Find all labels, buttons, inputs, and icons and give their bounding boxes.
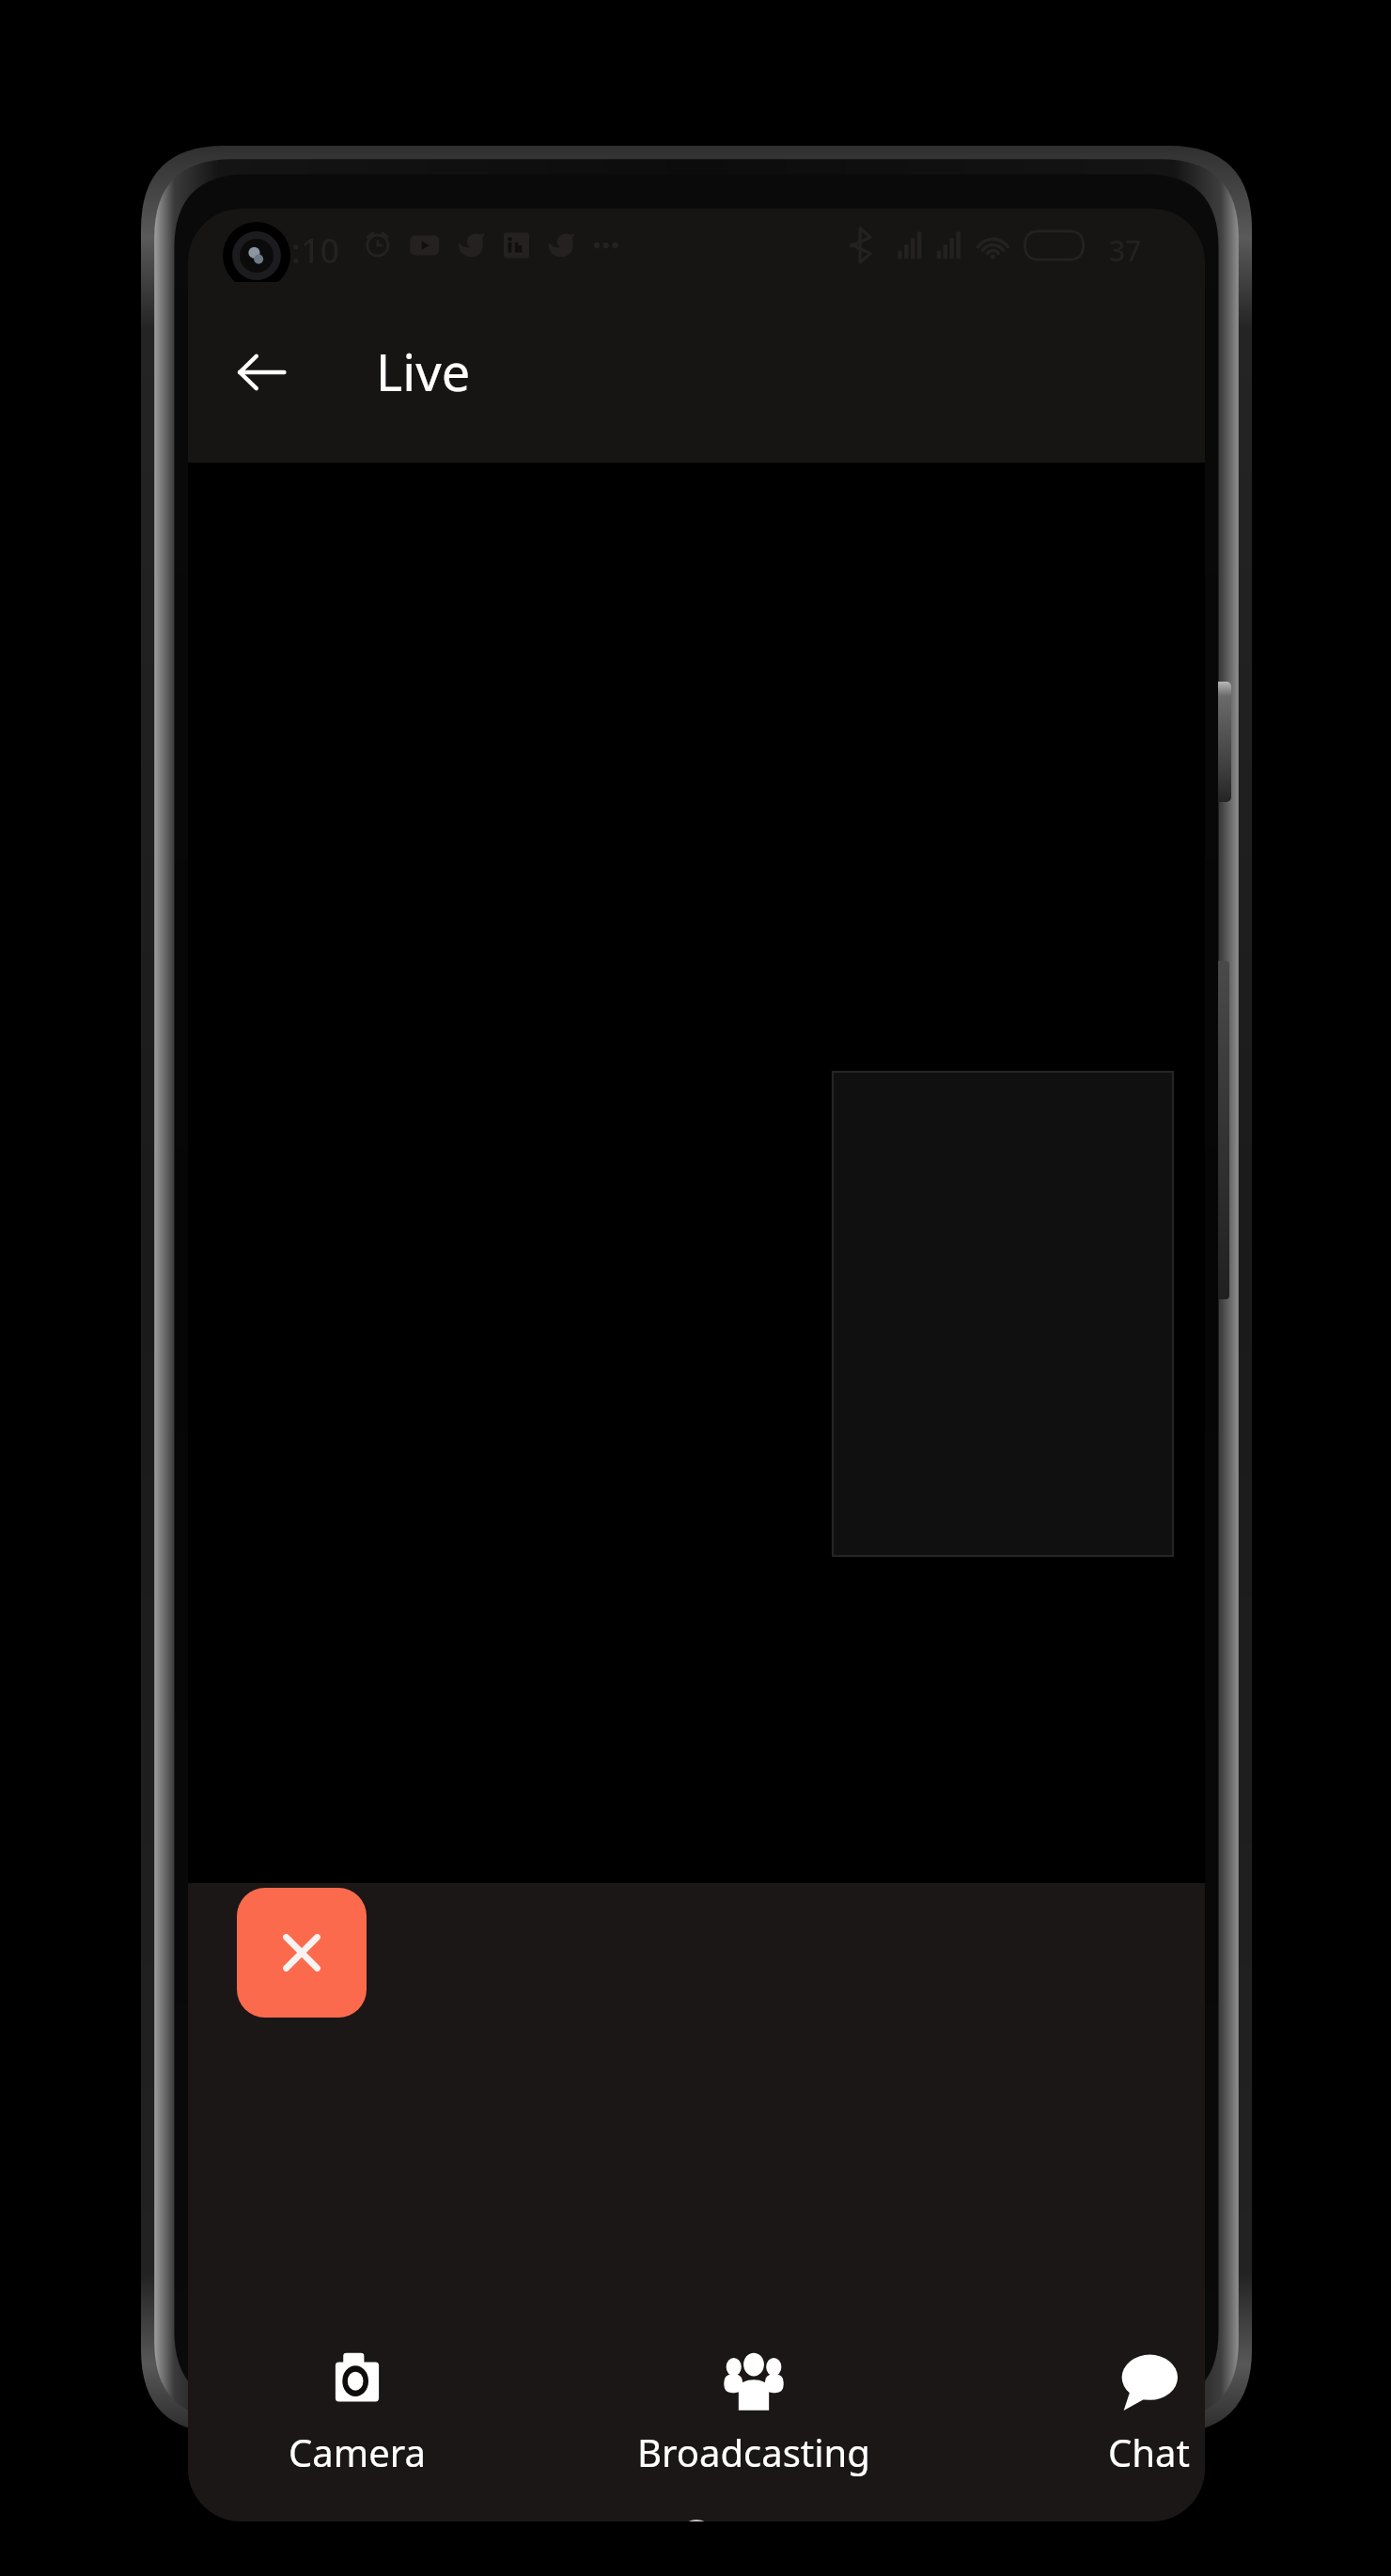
staticText: 37 bbox=[1109, 231, 1142, 270]
button[interactable]: Home bbox=[657, 2506, 736, 2521]
staticText: Broadcasting bbox=[637, 2427, 870, 2477]
button[interactable]: Camera bbox=[188, 2344, 526, 2521]
staticText: Live bbox=[376, 337, 471, 406]
staticText: Camera bbox=[289, 2427, 426, 2477]
button[interactable]: End live stream bbox=[237, 1888, 367, 2018]
button[interactable]: Back bbox=[218, 329, 305, 416]
staticText: :10 bbox=[291, 228, 339, 274]
button[interactable]: Broadcasting bbox=[585, 2344, 923, 2521]
staticText: Chat bbox=[1108, 2427, 1190, 2477]
button[interactable]: Chat bbox=[979, 2344, 1205, 2521]
